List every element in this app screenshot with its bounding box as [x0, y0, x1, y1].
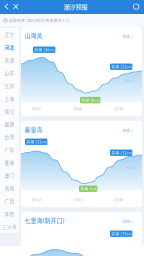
staticText: 高潮 146cm — [34, 47, 54, 52]
staticText: 高潮 112cm — [111, 150, 131, 155]
staticText: 详情 > — [122, 127, 133, 133]
staticText: 高潮 175cm — [111, 231, 131, 236]
staticText: 江苏 — [4, 82, 14, 89]
staticText: 22:49 — [114, 197, 123, 202]
staticText: 91cm — [126, 165, 135, 170]
staticText: 当前时间: 2022-05-12 农历四月十二 — [9, 18, 70, 23]
staticText: 辽宁 — [4, 31, 14, 38]
staticText: 详情 > — [122, 33, 133, 39]
button[interactable]: 广西 — [0, 194, 19, 207]
staticText: 福建 — [4, 121, 14, 127]
button[interactable]: Close — [11, 1, 21, 12]
staticText: 13:51 — [73, 197, 82, 202]
button[interactable]: 香港 — [0, 156, 19, 169]
staticText: 上海 — [4, 95, 14, 102]
staticText: 秦皇岛 — [24, 125, 42, 133]
button[interactable]: 台湾 — [0, 130, 19, 143]
button[interactable]: 三沙市 — [0, 220, 19, 233]
button[interactable]: 辽宁 — [0, 28, 19, 41]
button[interactable]: 详情 > — [120, 217, 135, 226]
staticText: 14:06 — [73, 106, 82, 111]
staticText: 三沙市 — [2, 223, 17, 230]
staticText: 海南 — [4, 185, 14, 191]
staticText: 高潮 121cm — [26, 139, 46, 144]
staticText: 03:12 — [32, 197, 41, 202]
staticText: 广西 — [4, 197, 14, 204]
button[interactable]: 江苏 — [0, 79, 19, 92]
button[interactable]: 广东 — [0, 143, 19, 156]
staticText: 七里海(新开口) — [24, 216, 64, 224]
button[interactable]: 河北 — [0, 41, 19, 54]
staticText: 山东 — [4, 69, 14, 76]
staticText: 天津 — [4, 57, 14, 63]
staticText: 04:01 — [32, 106, 41, 111]
staticText: 香港 — [4, 159, 14, 166]
button[interactable]: 详情 > — [120, 32, 135, 41]
staticText: 山海关 — [24, 31, 42, 39]
button[interactable]: Back — [0, 1, 11, 12]
button[interactable]: Refresh — [130, 1, 144, 12]
staticText: 低潮 50cm — [81, 97, 99, 103]
staticText: 浙江 — [4, 108, 14, 114]
staticText: 234cm — [123, 78, 134, 83]
button[interactable]: 天津 — [0, 54, 19, 66]
staticText: 高潮 122cm — [111, 64, 131, 69]
button[interactable]: 福建 — [0, 118, 19, 130]
button[interactable]: 山东 — [0, 66, 19, 79]
staticText: 广东 — [4, 146, 14, 153]
button[interactable]: 上海 — [0, 92, 19, 105]
button[interactable]: 海南 — [0, 182, 19, 194]
staticText: 河北 — [4, 44, 14, 50]
staticText: 潮汐预报 — [63, 2, 87, 11]
staticText: 其他 — [4, 210, 14, 217]
button[interactable]: 详情 > — [120, 126, 135, 135]
button[interactable]: 浙江 — [0, 105, 19, 118]
staticText: 详情 > — [122, 218, 133, 224]
button[interactable]: 澳门 — [0, 169, 19, 182]
staticText: 低潮 7cm — [80, 186, 96, 191]
button[interactable]: 其他 — [0, 207, 19, 220]
staticText: 澳门 — [4, 172, 14, 178]
staticText: 台湾 — [4, 133, 14, 140]
staticText: 22:50 — [114, 106, 123, 111]
